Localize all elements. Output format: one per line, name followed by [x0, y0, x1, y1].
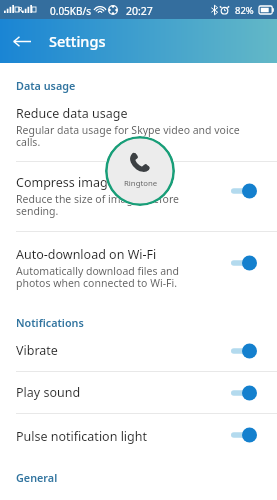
staticText: Pulse notification light [16, 428, 231, 445]
staticText: Notifications [16, 315, 84, 330]
button[interactable]: Toggle [231, 181, 257, 201]
button[interactable]: Ringtone [105, 136, 175, 206]
button[interactable]: Back [3, 19, 41, 63]
staticText: Regular data usage for Skype video and v… [16, 123, 246, 149]
staticText: Reduce data usage [16, 105, 128, 122]
staticText: 82% [235, 4, 254, 17]
staticText: R [18, 5, 23, 15]
staticText: Ringtone [124, 178, 158, 189]
button[interactable]: Toggle [231, 383, 257, 403]
staticText: Reduce the size of images before sending… [16, 192, 202, 218]
button[interactable]: Compress image [0, 162, 277, 231]
button[interactable]: Vibrate [0, 330, 277, 371]
staticText: General [16, 470, 58, 485]
button[interactable]: Toggle [231, 341, 257, 361]
button[interactable]: Pulse notification light [0, 414, 277, 455]
staticText: Vibrate [16, 342, 231, 359]
staticText: Compress image [16, 174, 115, 191]
staticText: Automatically download files and photos … [16, 264, 202, 290]
staticText: 0.05KB/s [50, 4, 92, 18]
button[interactable]: Reduce data usage [0, 93, 277, 161]
staticText: 20:27 [126, 4, 153, 18]
staticText: Settings [49, 31, 106, 51]
staticText: Auto-download on Wi-Fi [16, 246, 157, 263]
button[interactable]: Play sound [0, 372, 277, 413]
button[interactable]: Auto-download on Wi-Fi [0, 232, 277, 301]
button[interactable]: Toggle [231, 425, 257, 445]
button[interactable]: Toggle [231, 253, 257, 273]
staticText: Play sound [16, 384, 231, 401]
staticText: Data usage [16, 78, 76, 93]
